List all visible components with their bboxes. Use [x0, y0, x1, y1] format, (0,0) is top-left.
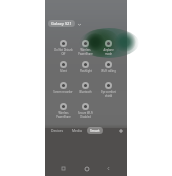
button[interactable]: Media: [69, 127, 85, 134]
button[interactable]: Screen recorder: [52, 79, 74, 100]
button[interactable]: Flashlight: [74, 58, 97, 79]
button[interactable]: Eye comfort shield: [97, 79, 120, 100]
button[interactable]: Do Not Disturb Off: [52, 37, 74, 58]
button[interactable]: Wi-Fi calling: [97, 58, 120, 79]
button[interactable]: Airplane mode: [97, 37, 120, 58]
staticText: Wireless PowerShare: [78, 48, 93, 55]
button[interactable]: Bluetooth: [74, 79, 97, 100]
staticText: Smart: [90, 128, 100, 133]
button[interactable]: Wireless PowerShare: [52, 100, 74, 121]
button[interactable]: Devices: [48, 127, 67, 134]
staticText: Screen recorder: [53, 90, 73, 94]
staticText: Eye comfort shield: [101, 90, 116, 97]
staticText: Galaxy S21: [51, 21, 72, 26]
staticText: Flashlight: [80, 69, 92, 73]
button[interactable]: Galaxy S21: [48, 20, 75, 27]
button[interactable]: Home: [82, 164, 91, 173]
staticText: Airplane mode: [103, 48, 114, 55]
staticText: Devices: [51, 128, 64, 133]
button[interactable]: Back: [104, 164, 113, 173]
button[interactable]: Smart: [87, 127, 103, 134]
staticText: Do Not Disturb Off: [54, 48, 73, 55]
button[interactable]: Silent: [52, 58, 74, 79]
staticText: Secure Wi-Fi Disabled: [78, 111, 93, 118]
staticText: Bluetooth: [79, 90, 92, 94]
button[interactable]: Secure Wi-Fi Disabled: [74, 100, 97, 121]
staticText: Wireless PowerShare: [56, 111, 71, 118]
staticText: Wi-Fi calling: [101, 69, 116, 73]
button[interactable]: Recents: [59, 164, 68, 173]
button[interactable]: Expand: [76, 21, 82, 27]
staticText: Media: [72, 128, 82, 133]
staticText: Silent: [60, 69, 67, 73]
button[interactable]: Wireless PowerShare: [74, 37, 97, 58]
button[interactable]: Add: [117, 127, 124, 134]
